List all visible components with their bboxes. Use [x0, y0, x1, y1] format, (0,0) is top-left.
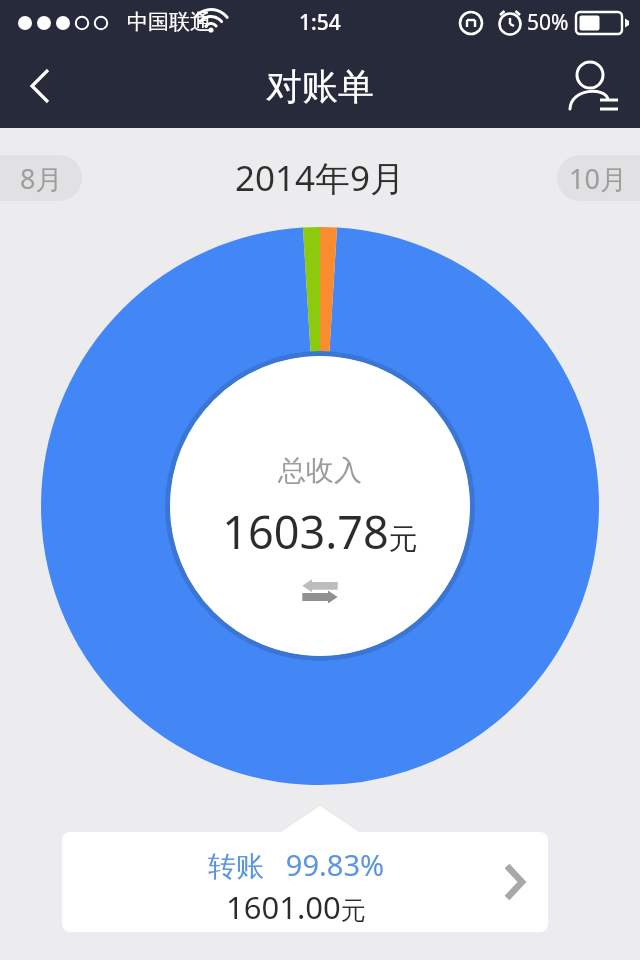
staticText: 10月	[569, 160, 627, 197]
staticText: 1601.00元	[226, 886, 366, 928]
button[interactable]: 8月	[0, 155, 82, 201]
staticText: 中国联通	[127, 9, 211, 35]
staticText: 1:54	[299, 8, 341, 37]
button[interactable]: Back	[8, 54, 72, 118]
button[interactable]: 转账 99.83%	[62, 832, 548, 932]
staticText: 1603.78元	[222, 501, 418, 562]
button[interactable]: 10月	[557, 155, 640, 201]
staticText: 总收入	[278, 453, 362, 488]
staticText: 2014年9月	[235, 154, 406, 202]
staticText: 50%	[527, 8, 569, 37]
button[interactable]: Switch income and expense	[294, 565, 346, 617]
staticText: 8月	[20, 160, 63, 197]
button[interactable]: Account	[562, 53, 628, 119]
staticText: 转账 99.83%	[208, 845, 385, 884]
staticText: 对账单	[266, 64, 374, 109]
